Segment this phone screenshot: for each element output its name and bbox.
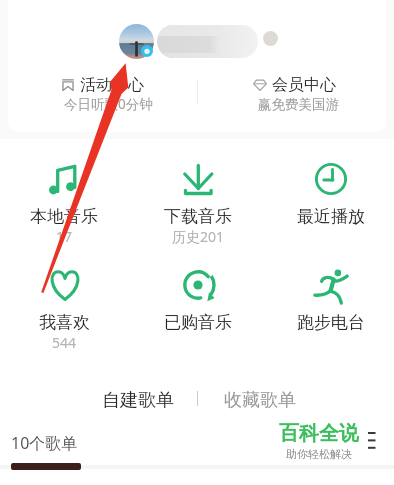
button[interactable]: 最近播放 bbox=[276, 160, 386, 252]
staticText: 我喜欢 bbox=[39, 312, 90, 333]
staticText: 历史201 bbox=[172, 227, 225, 246]
staticText: 下载音乐 bbox=[164, 206, 232, 227]
staticText: 已购音乐 bbox=[164, 312, 232, 333]
button[interactable]: 下载音乐 bbox=[143, 160, 253, 252]
staticText: 助你轻松解决 bbox=[286, 447, 352, 461]
button[interactable]: Profile avatar bbox=[119, 24, 154, 59]
staticText: 百科全说 bbox=[279, 421, 359, 446]
staticText: 10个歌单 bbox=[11, 432, 78, 454]
button[interactable]: 跑步电台 bbox=[276, 266, 386, 358]
button[interactable]: 收藏歌单 bbox=[224, 389, 296, 412]
button[interactable]: 自建歌单 bbox=[102, 389, 174, 412]
staticText: 最近播放 bbox=[297, 206, 365, 227]
staticText: 自建歌单 bbox=[102, 389, 174, 412]
staticText: 今日听歌0分钟 bbox=[64, 95, 153, 113]
staticText: 会员中心 bbox=[272, 75, 336, 95]
staticText: 本地音乐 bbox=[30, 206, 98, 227]
button[interactable]: More options bbox=[368, 428, 382, 452]
staticText: 跑步电台 bbox=[297, 312, 365, 333]
staticText: 活动中心 bbox=[80, 75, 144, 95]
staticText: 收藏歌单 bbox=[224, 389, 296, 412]
staticText: 17 bbox=[56, 227, 73, 246]
button[interactable]: 本地音乐 bbox=[9, 160, 119, 252]
button[interactable]: 百科全说 bbox=[279, 421, 359, 460]
staticText: 544 bbox=[52, 333, 77, 352]
button[interactable]: 我喜欢 bbox=[9, 266, 119, 358]
button[interactable]: 已购音乐 bbox=[143, 266, 253, 358]
staticText: 赢免费美国游 bbox=[258, 96, 339, 113]
